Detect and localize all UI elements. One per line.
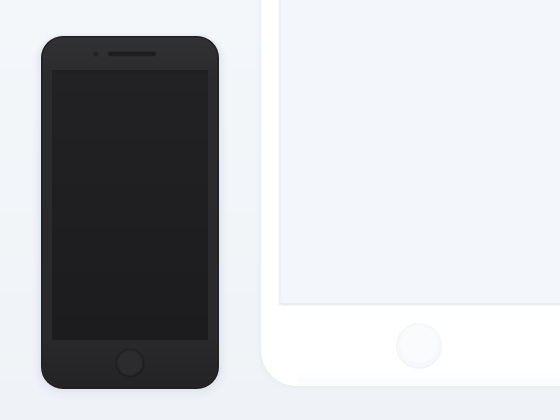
button[interactable]: White tablet device mockup [0,0,560,420]
button[interactable]: Black smartphone device mockup [0,0,560,420]
